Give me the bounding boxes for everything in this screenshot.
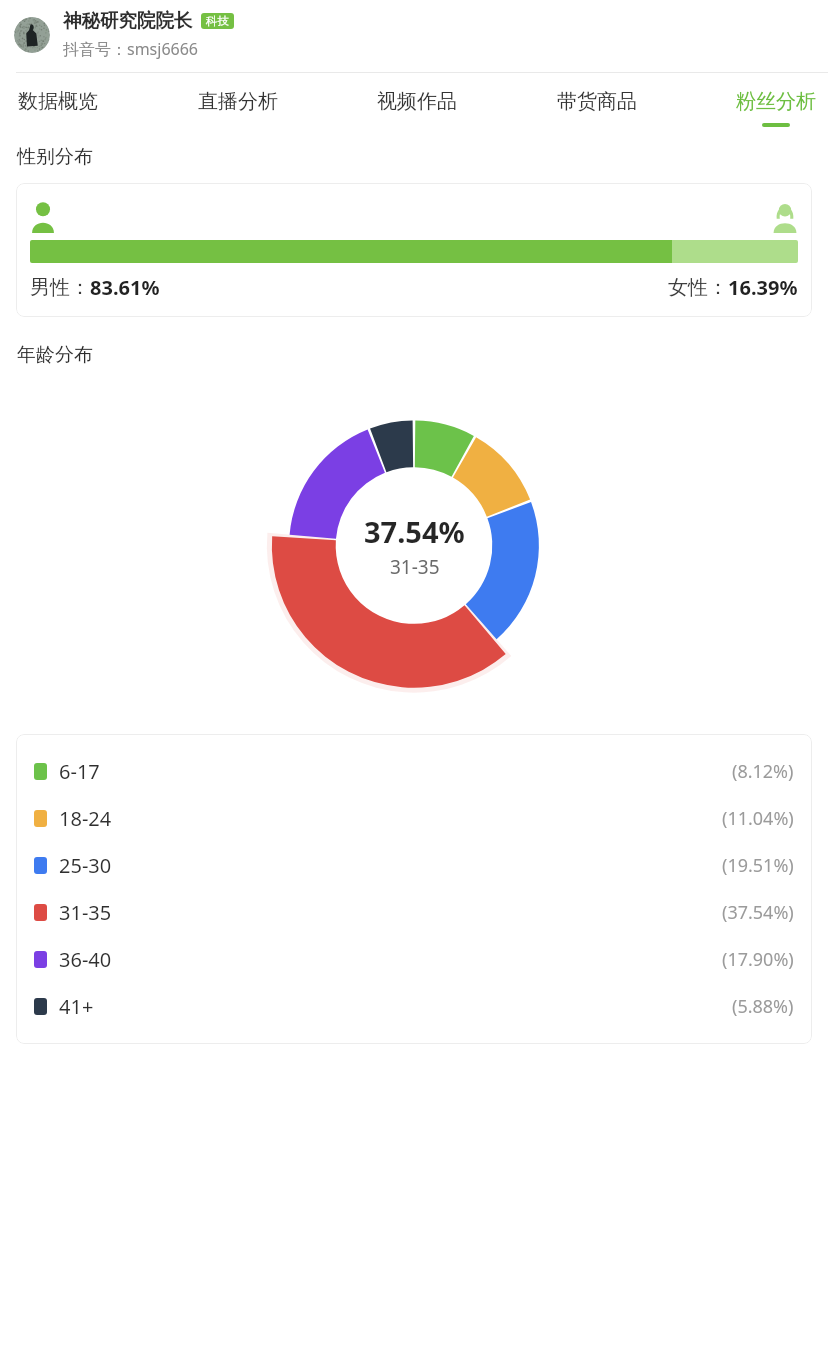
button[interactable]: Avatar — [14, 9, 814, 60]
staticText: 36-40 — [59, 946, 112, 973]
staticText: 粉丝分析 — [736, 89, 816, 114]
other: Avatar — [14, 17, 50, 53]
staticText: 科技 — [206, 14, 229, 28]
button[interactable]: 带货商品 — [555, 73, 639, 131]
staticText: 直播分析 — [198, 89, 278, 114]
staticText: (11.04%) — [722, 806, 794, 831]
staticText: 女性： — [668, 275, 728, 300]
staticText: 性别分布 — [17, 145, 93, 169]
staticText: 年龄分布 — [17, 343, 93, 367]
staticText: 视频作品 — [377, 89, 457, 114]
button[interactable]: 直播分析 — [196, 73, 280, 131]
button[interactable]: 18-24 — [34, 795, 794, 842]
button[interactable]: 41+ — [34, 983, 794, 1030]
staticText: 男性： — [30, 275, 90, 300]
staticText: 带货商品 — [557, 89, 637, 114]
button[interactable]: 25-30 — [34, 842, 794, 889]
button[interactable]: 视频作品 — [375, 73, 459, 131]
staticText: 31-35 — [390, 554, 440, 580]
staticText: 37.54% — [364, 512, 465, 551]
staticText: 25-30 — [59, 852, 112, 879]
button[interactable]: 36-40 — [34, 936, 794, 983]
staticText: 83.61% — [90, 274, 160, 301]
staticText: (17.90%) — [722, 947, 794, 972]
button[interactable]: 6-17 — [34, 748, 794, 795]
button[interactable]: Male — [16, 183, 812, 317]
other: Female — [772, 199, 798, 233]
staticText: 31-35 — [59, 899, 112, 926]
staticText: 18-24 — [59, 805, 112, 832]
other: Male — [30, 199, 56, 233]
staticText: (5.88%) — [732, 994, 794, 1019]
staticText: (8.12%) — [732, 759, 794, 784]
staticText: 数据概览 — [18, 89, 98, 114]
staticText: (19.51%) — [722, 853, 794, 878]
staticText: (37.54%) — [722, 900, 794, 925]
button[interactable]: 31-35 — [34, 889, 794, 936]
staticText: 神秘研究院院长 — [63, 9, 193, 32]
staticText: 16.39% — [728, 274, 798, 301]
staticText: 抖音号：smsj6666 — [63, 38, 199, 60]
staticText: 6-17 — [59, 758, 100, 785]
staticText: 41+ — [59, 993, 94, 1020]
button[interactable]: 数据概览 — [16, 73, 100, 131]
button[interactable]: 粉丝分析 — [734, 73, 818, 131]
